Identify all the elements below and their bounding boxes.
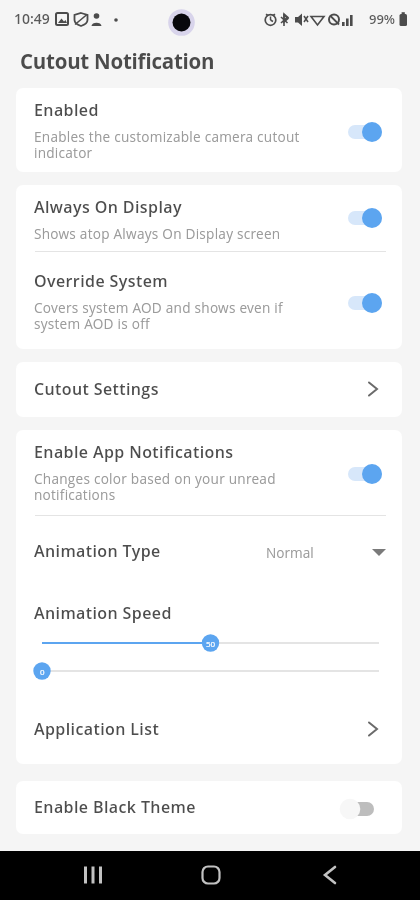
staticText: Changes color based on your unread notif… xyxy=(34,469,296,504)
staticText: Shows atop Always On Display screen xyxy=(34,224,334,243)
button[interactable]: Slider 0 xyxy=(32,660,389,682)
button[interactable]: Slider 50 xyxy=(32,632,389,654)
button[interactable]: Back xyxy=(310,855,350,895)
button[interactable]: Recent apps xyxy=(73,855,113,895)
staticText: Animation Speed xyxy=(34,602,172,624)
staticText: Cutout Notification xyxy=(20,47,215,75)
staticText: Override System xyxy=(34,270,168,292)
button[interactable]: Toggle on xyxy=(348,120,384,144)
staticText: Animation Type xyxy=(34,540,161,562)
button[interactable]: Normal xyxy=(266,539,386,565)
button[interactable]: Toggle on xyxy=(348,462,384,486)
staticText: Normal xyxy=(266,543,372,562)
button[interactable]: Home xyxy=(191,855,231,895)
staticText: Enables the customizable camera cutout i… xyxy=(34,127,316,162)
button[interactable]: Toggle on xyxy=(348,206,384,230)
staticText: 99% xyxy=(369,10,396,28)
staticText: 10:49 xyxy=(14,9,50,28)
staticText: Cutout Settings xyxy=(34,378,159,400)
staticText: Enable Black Theme xyxy=(34,796,196,818)
button[interactable]: Toggle on xyxy=(348,291,384,315)
staticText: 0 xyxy=(40,666,45,677)
button[interactable]: Open xyxy=(364,377,388,401)
staticText: 50 xyxy=(206,638,216,649)
button[interactable]: Open xyxy=(364,717,388,741)
staticText: Enabled xyxy=(34,99,99,121)
staticText: Application List xyxy=(34,718,160,740)
staticText: Always On Display xyxy=(34,196,182,218)
staticText: Covers system AOD and shows even if syst… xyxy=(34,298,310,333)
staticText: Enable App Notifications xyxy=(34,441,234,463)
button[interactable]: Toggle off xyxy=(348,797,384,821)
